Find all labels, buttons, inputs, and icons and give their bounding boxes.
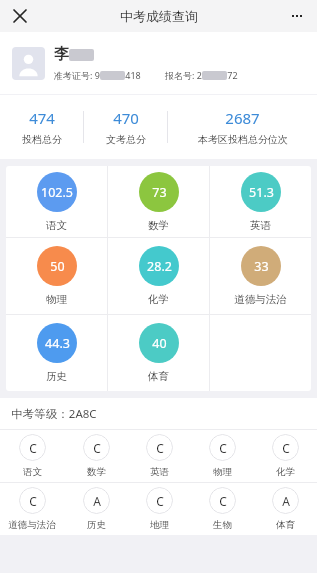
staticText: 本考区投档总分位次 — [198, 133, 288, 146]
staticText: C — [156, 493, 164, 509]
button[interactable]: 28.2 — [108, 238, 209, 314]
staticText: 英语 — [150, 466, 169, 478]
button[interactable]: Close — [5, 1, 35, 31]
staticText: 语文 — [23, 466, 42, 478]
staticText: 化学 — [276, 466, 295, 478]
button[interactable]: 44.3 — [6, 315, 107, 391]
button[interactable]: 33 — [210, 238, 311, 314]
staticText: 44.3 — [45, 335, 70, 352]
staticText: 道德与法治 — [234, 293, 287, 306]
staticText: 73 — [152, 184, 167, 201]
staticText: 李 — [54, 45, 69, 64]
button[interactable]: 李 — [0, 32, 317, 94]
staticText: 102.5 — [41, 184, 73, 201]
button[interactable]: 470 — [84, 95, 167, 159]
button[interactable]: C — [0, 483, 64, 535]
button[interactable]: 40 — [108, 315, 209, 391]
button[interactable]: 2687 — [168, 95, 317, 159]
button[interactable]: 73 — [108, 166, 209, 237]
button[interactable]: C — [191, 430, 254, 482]
staticText: 报名号: 2 — [165, 69, 202, 81]
staticText: 2687 — [225, 108, 260, 128]
staticText: C — [219, 440, 227, 456]
staticText: 50 — [50, 258, 65, 275]
staticText: 数学 — [148, 219, 169, 232]
button[interactable]: More options — [282, 1, 312, 31]
staticText: 历史 — [46, 370, 67, 383]
staticText: 33 — [254, 258, 269, 275]
button[interactable]: 102.5 — [6, 166, 107, 237]
staticText: 道德与法治 — [8, 519, 56, 531]
staticText: 体育 — [148, 370, 169, 383]
staticText: 英语 — [250, 219, 271, 232]
button[interactable]: C — [191, 483, 254, 535]
staticText: 语文 — [46, 219, 67, 232]
staticText: 生物 — [213, 519, 232, 531]
staticText: 体育 — [276, 519, 295, 531]
staticText: A — [282, 493, 290, 509]
button[interactable]: C — [0, 430, 64, 482]
staticText: C — [93, 440, 101, 456]
staticText: 470 — [113, 108, 139, 128]
button[interactable]: A — [64, 483, 128, 535]
staticText: C — [219, 493, 227, 509]
staticText: C — [156, 440, 164, 456]
button[interactable]: C — [128, 483, 191, 535]
staticText: C — [29, 440, 37, 456]
staticText: 数学 — [87, 466, 106, 478]
staticText: C — [282, 440, 290, 456]
staticText: 准考证号: 9 — [54, 69, 100, 81]
staticText: 物理 — [46, 293, 67, 306]
staticText: 474 — [29, 108, 55, 128]
staticText: 40 — [152, 335, 167, 352]
staticText: 72 — [227, 69, 238, 81]
staticText: 51.3 — [249, 184, 274, 201]
staticText: 中考成绩查询 — [120, 8, 198, 24]
button[interactable]: C — [128, 430, 191, 482]
staticText: 文考总分 — [106, 133, 146, 146]
button[interactable]: A — [254, 483, 317, 535]
staticText: C — [29, 493, 37, 509]
staticText: 28.2 — [147, 258, 172, 275]
staticText: 中考等级：2A8C — [11, 406, 97, 422]
button[interactable]: 51.3 — [210, 166, 311, 237]
staticText: 投档总分 — [22, 133, 62, 146]
staticText: A — [93, 493, 101, 509]
staticText: 418 — [125, 69, 141, 81]
staticText: 地理 — [150, 519, 169, 531]
button[interactable]: C — [64, 430, 128, 482]
button[interactable]: 50 — [6, 238, 107, 314]
button[interactable]: 474 — [0, 95, 83, 159]
button[interactable]: C — [254, 430, 317, 482]
staticText: 历史 — [87, 519, 106, 531]
staticText: 物理 — [213, 466, 232, 478]
staticText: 化学 — [148, 293, 169, 306]
